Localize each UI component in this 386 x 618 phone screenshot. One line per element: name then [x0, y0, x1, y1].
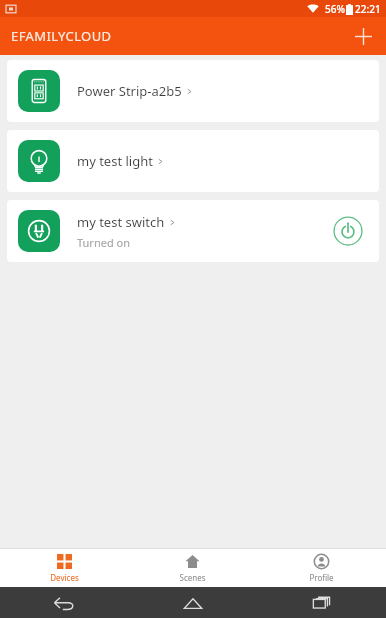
button[interactable]: Power Strip-a2b5: [7, 60, 379, 122]
staticText: Power Strip-a2b5: [77, 82, 182, 100]
staticText: 56%: [325, 2, 345, 16]
button[interactable]: Recent apps: [307, 588, 337, 618]
button[interactable]: Home: [178, 588, 208, 618]
staticText: Scenes: [179, 572, 206, 583]
button[interactable]: Scenes: [128, 549, 257, 587]
button[interactable]: Add device: [346, 19, 380, 53]
button[interactable]: my test switch: [7, 200, 379, 262]
staticText: Devices: [50, 572, 79, 583]
staticText: Turned on: [77, 235, 130, 250]
staticText: 22:21: [355, 2, 381, 16]
staticText: EFAMILYCLOUD: [11, 27, 112, 45]
staticText: Profile: [309, 572, 334, 583]
button[interactable]: Toggle power: [331, 214, 365, 248]
button[interactable]: Profile: [257, 549, 386, 587]
staticText: my test switch: [77, 213, 165, 231]
button[interactable]: Devices: [0, 549, 128, 587]
staticText: my test light: [77, 152, 153, 170]
button[interactable]: Back: [49, 588, 79, 618]
button[interactable]: my test light: [7, 130, 379, 192]
